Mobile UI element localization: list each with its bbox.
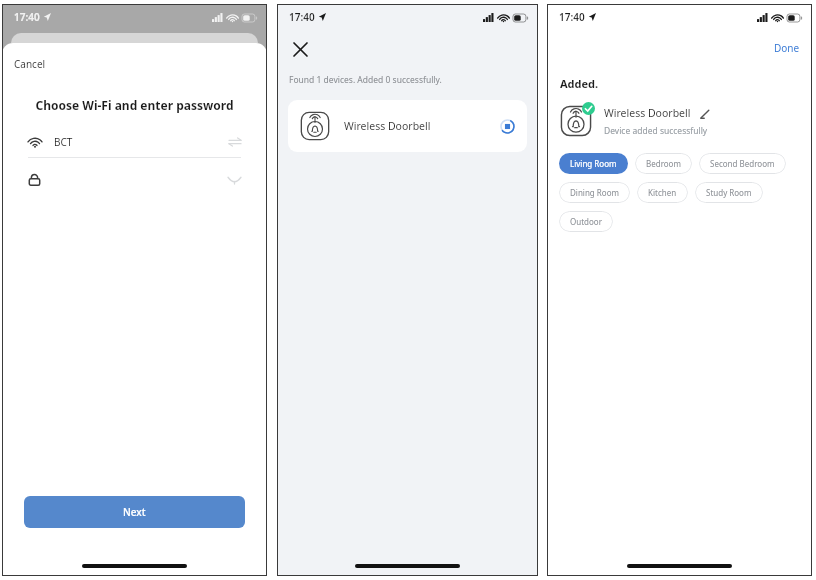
- button[interactable]: Next: [24, 496, 245, 528]
- staticText: Wireless Doorbell: [604, 106, 691, 120]
- staticText: Bedroom: [646, 158, 681, 169]
- button[interactable]: Dining Room: [559, 182, 630, 203]
- button[interactable]: Show password: [2, 158, 267, 200]
- staticText: Cancel: [14, 57, 46, 71]
- button[interactable]: Close: [287, 36, 313, 62]
- staticText: Kitchen: [648, 187, 677, 198]
- button[interactable]: Study Room: [695, 182, 763, 203]
- staticText: Second Bedroom: [710, 158, 775, 169]
- button[interactable]: Living Room: [559, 153, 628, 174]
- button[interactable]: Rename device: [698, 107, 711, 120]
- staticText: Device added successfully: [604, 125, 708, 137]
- staticText: 17:40: [14, 10, 40, 24]
- button[interactable]: Kitchen: [637, 182, 688, 203]
- staticText: BCT: [54, 135, 73, 149]
- staticText: Found 1 devices. Added 0 successfully.: [289, 74, 442, 86]
- staticText: Dining Room: [570, 187, 619, 198]
- staticText: Added.: [560, 76, 599, 91]
- staticText: Done: [774, 41, 800, 55]
- other: Show password: [228, 175, 241, 184]
- staticText: Choose Wi-Fi and enter password: [2, 97, 267, 113]
- button[interactable]: Cancel: [2, 53, 58, 75]
- staticText: Wireless Doorbell: [344, 119, 431, 133]
- button[interactable]: Bedroom: [635, 153, 692, 174]
- staticText: 17:40: [289, 10, 315, 24]
- staticText: 17:40: [559, 10, 585, 24]
- button[interactable]: Second Bedroom: [699, 153, 786, 174]
- other: Switch network: [229, 136, 241, 148]
- button[interactable]: Done: [762, 36, 812, 60]
- staticText: Outdoor: [570, 216, 602, 227]
- staticText: Living Room: [570, 158, 617, 169]
- staticText: Study Room: [706, 187, 752, 198]
- button[interactable]: Outdoor: [559, 211, 613, 232]
- button[interactable]: Wireless Doorbell: [288, 100, 527, 152]
- staticText: Next: [123, 505, 146, 519]
- button[interactable]: BCT: [2, 127, 267, 157]
